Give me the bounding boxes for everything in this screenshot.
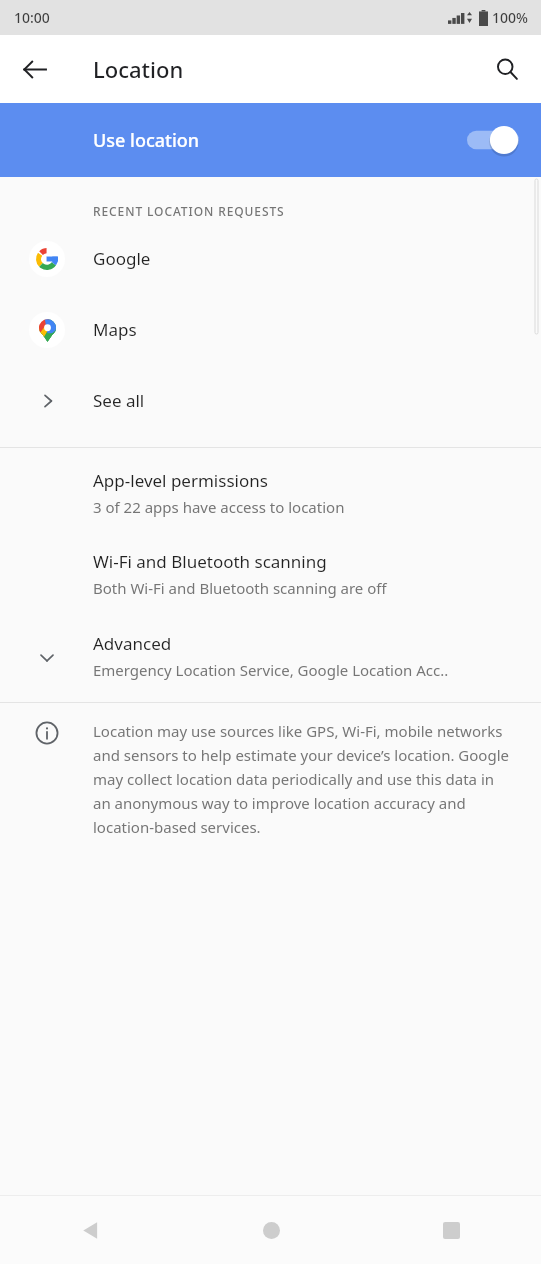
staticText: Advanced [93,632,172,655]
button[interactable]: Wi-Fi and Bluetooth scanning [0,517,541,598]
button[interactable]: Maps [0,294,541,365]
staticText: RECENT LOCATION REQUESTS [93,203,285,219]
button[interactable]: Google [0,223,541,294]
staticText: See all [93,389,145,412]
button[interactable]: Back [0,1196,181,1264]
staticText: App-level permissions [93,469,268,492]
button[interactable]: Advanced [0,598,541,680]
button[interactable]: Home [181,1196,361,1264]
staticText: Emergency Location Service, Google Locat… [93,660,449,680]
button[interactable]: Search [483,45,531,93]
staticText: Both Wi-Fi and Bluetooth scanning are of… [93,578,387,598]
staticText: Google [93,247,151,270]
button[interactable]: Back [10,45,58,93]
button[interactable]: See all [0,365,541,436]
staticText: Maps [93,318,137,341]
button[interactable]: App-level permissions [0,448,541,517]
staticText: 10:00 [14,8,50,27]
staticText: Location may use sources like GPS, Wi-Fi… [93,721,515,837]
button[interactable]: Use location [0,103,541,177]
staticText: 3 of 22 apps have access to location [93,497,345,517]
staticText: Location [93,54,184,84]
staticText: Wi-Fi and Bluetooth scanning [93,550,327,573]
button[interactable]: Recent apps [361,1196,541,1264]
staticText: 100% [492,8,528,27]
staticText: Use location [93,128,200,153]
